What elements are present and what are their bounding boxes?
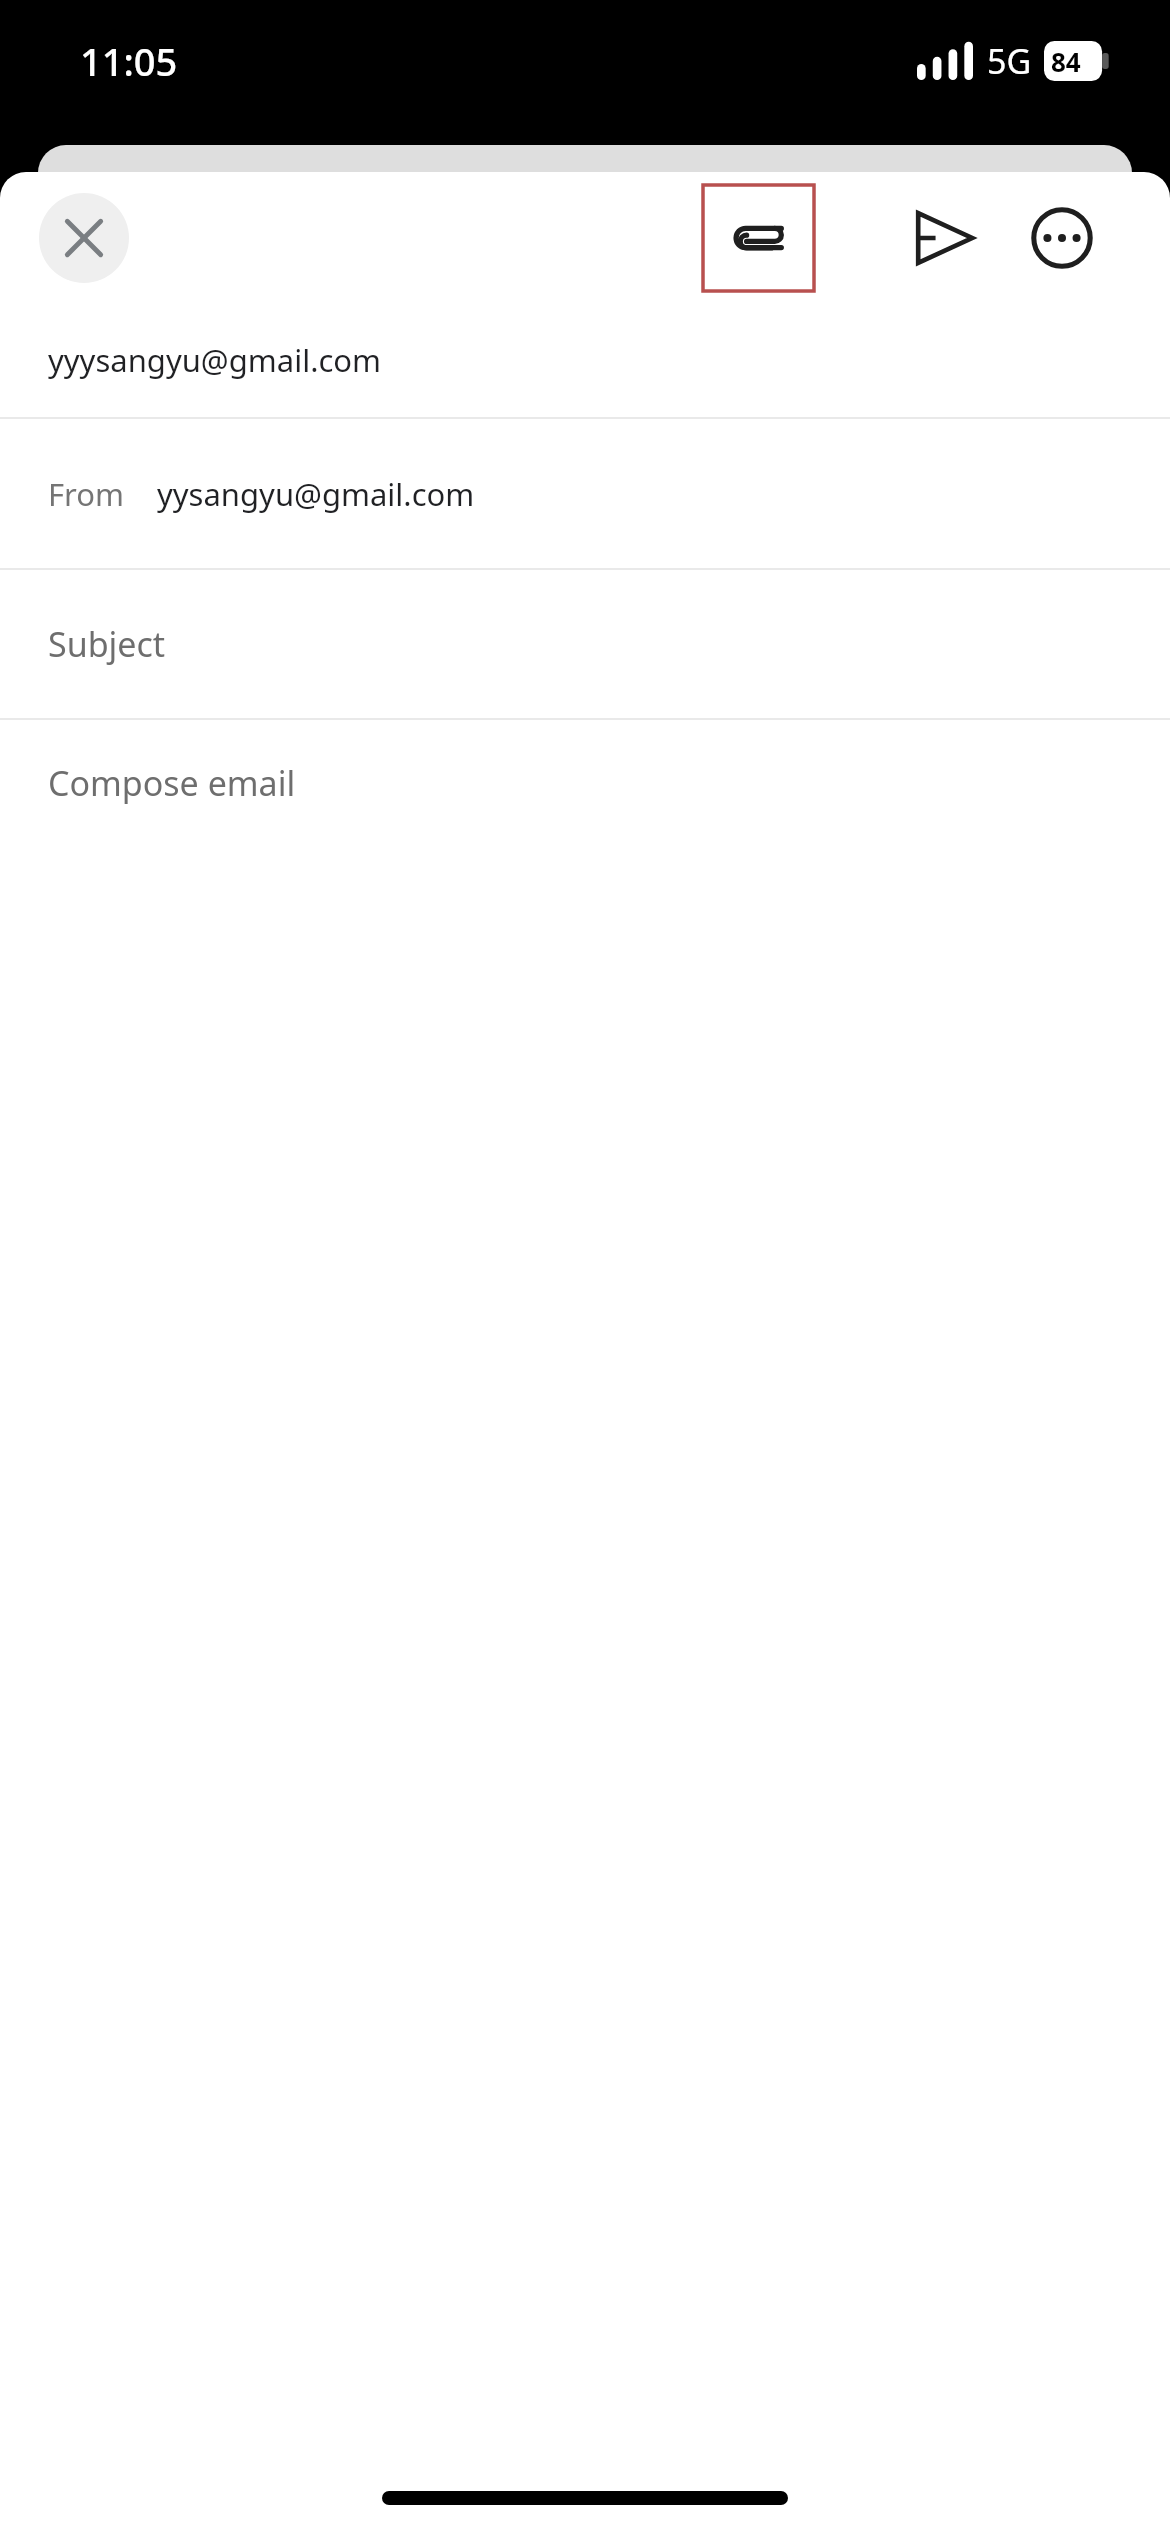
staticText: Compose email [48, 760, 296, 806]
staticText: Subject [48, 621, 166, 667]
button[interactable]: Send [888, 183, 998, 293]
staticText: 11:05 [80, 35, 178, 87]
staticText: 5G [987, 38, 1032, 84]
button[interactable]: Attach file [703, 185, 814, 291]
button[interactable]: From [0, 419, 1170, 568]
staticText: 84 [1051, 44, 1081, 79]
button[interactable]: Subject [0, 570, 1170, 718]
button[interactable]: More options [1007, 183, 1117, 293]
button[interactable]: yyysangyu@gmail.com [0, 303, 1170, 417]
staticText: yysangyu@gmail.com [157, 473, 475, 515]
staticText: From [48, 473, 125, 515]
button[interactable]: Close [39, 193, 129, 283]
staticText: yyysangyu@gmail.com [48, 339, 382, 381]
button[interactable]: Compose email [0, 720, 1170, 940]
